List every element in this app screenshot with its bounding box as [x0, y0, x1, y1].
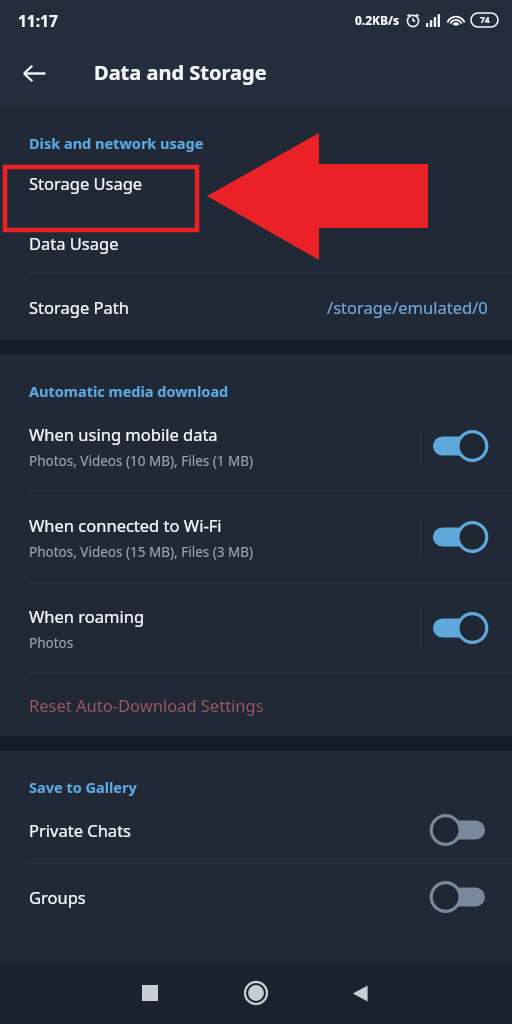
staticText: Data and Storage — [94, 59, 267, 86]
button[interactable]: When using mobile data — [0, 401, 512, 491]
staticText: When connected to Wi-Fi — [29, 514, 222, 536]
staticText: Groups — [29, 886, 86, 908]
staticText: Storage Usage — [29, 172, 143, 194]
button[interactable]: Storage Path — [0, 274, 512, 340]
staticText: Photos, Videos (10 MB), Files (1 MB) — [29, 452, 254, 470]
button[interactable]: Storage Usage — [0, 153, 512, 212]
button[interactable]: Private Chats — [0, 797, 512, 863]
staticText: 11:17 — [18, 10, 58, 31]
button[interactable]: When connected to Wi-Fi — [0, 492, 512, 582]
button[interactable]: Private Chats — [424, 807, 490, 853]
staticText: When roaming — [29, 605, 145, 627]
button[interactable]: Home — [228, 965, 284, 1021]
button[interactable]: When connected to Wi-Fi — [428, 514, 494, 560]
button[interactable]: Recent apps — [122, 965, 178, 1021]
button[interactable]: Data Usage — [0, 212, 512, 273]
button[interactable]: Groups — [424, 874, 490, 920]
staticText: Data Usage — [29, 232, 119, 254]
staticText: Automatic media download — [29, 381, 229, 401]
staticText: Save to Gallery — [29, 777, 137, 797]
staticText: /storage/emulated/0 — [327, 296, 488, 318]
staticText: Private Chats — [29, 819, 131, 841]
staticText: Storage Path — [29, 296, 129, 318]
button[interactable]: Back — [332, 965, 388, 1021]
button[interactable]: When roaming — [428, 605, 494, 651]
staticText: Photos, Videos (15 MB), Files (3 MB) — [29, 543, 254, 561]
button[interactable]: Groups — [0, 864, 512, 930]
staticText: Reset Auto-Download Settings — [29, 694, 264, 716]
staticText: When using mobile data — [29, 423, 218, 445]
staticText: Photos — [29, 634, 74, 652]
staticText: 0.2KB/s — [355, 12, 400, 28]
button[interactable]: Reset Auto-Download Settings — [0, 674, 512, 736]
staticText: 74 — [480, 14, 490, 26]
staticText: Disk and network usage — [29, 133, 204, 153]
button[interactable]: When using mobile data — [428, 423, 494, 469]
button[interactable]: Back — [8, 47, 60, 99]
button[interactable]: When roaming — [0, 583, 512, 673]
